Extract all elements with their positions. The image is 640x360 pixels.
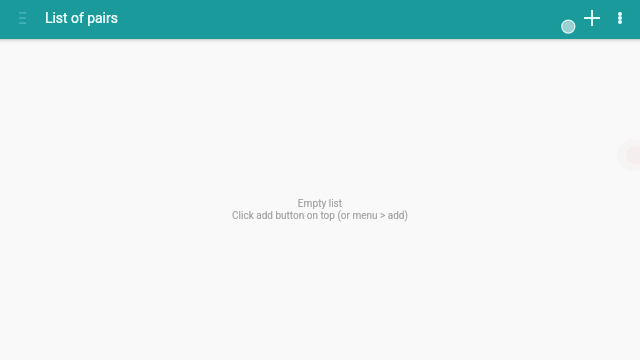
button[interactable]: More options xyxy=(606,4,634,32)
button[interactable]: Add pair xyxy=(575,1,608,34)
button[interactable]: Open navigation drawer xyxy=(8,4,36,32)
staticText: Empty list xyxy=(0,198,640,210)
staticText: Click add button on top (or menu > add) xyxy=(0,210,640,222)
staticText: List of pairs xyxy=(45,10,118,26)
